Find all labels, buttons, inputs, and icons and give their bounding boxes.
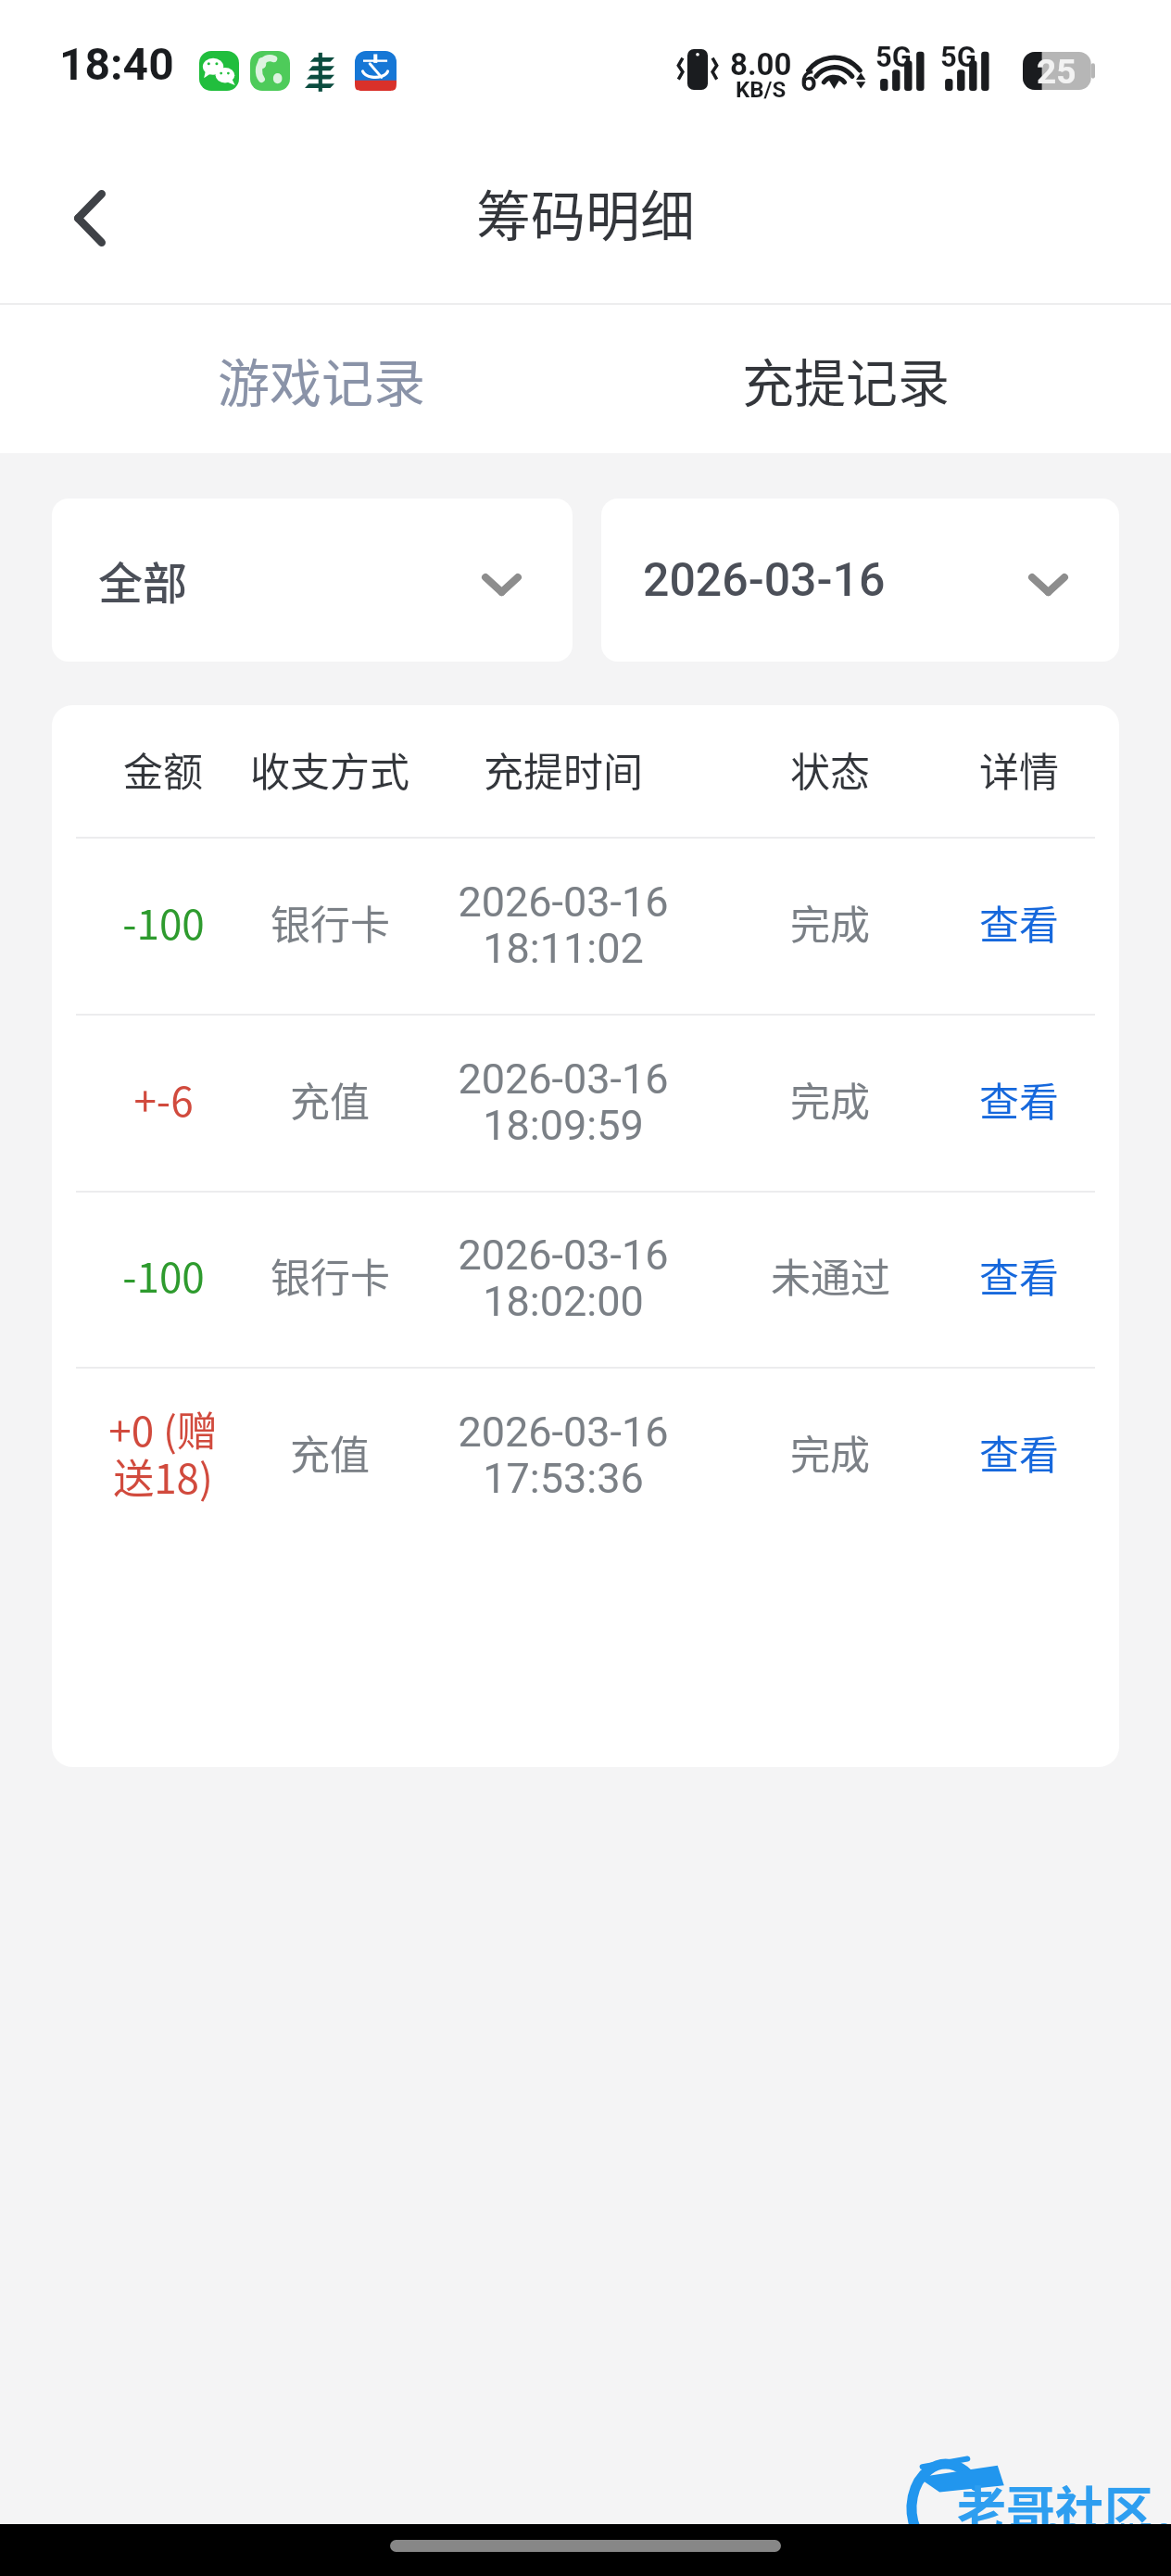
staticText: 充值 bbox=[290, 1423, 370, 1481]
staticText: 游戏记录 bbox=[218, 342, 425, 417]
staticText: 查看 bbox=[979, 1070, 1059, 1128]
staticText: 详情 bbox=[979, 740, 1059, 798]
staticText: 全部 bbox=[98, 548, 188, 612]
staticText: 完成 bbox=[790, 893, 870, 951]
staticText: 金额 bbox=[123, 740, 203, 798]
staticText: +-6 bbox=[133, 1069, 194, 1129]
staticText: 充提记录 bbox=[742, 342, 950, 417]
button[interactable]: Back bbox=[39, 167, 141, 269]
button[interactable]: 充提记录 bbox=[585, 305, 1171, 453]
staticText: 充提时间 bbox=[484, 740, 643, 798]
staticText: -100 bbox=[122, 1245, 205, 1305]
staticText: 状态 bbox=[790, 740, 870, 798]
staticText: 25 bbox=[1037, 52, 1077, 90]
staticText: KB/S bbox=[736, 77, 787, 103]
staticText: -100 bbox=[122, 892, 205, 952]
staticText: 筹码明细 bbox=[476, 173, 696, 252]
staticText: 18:40 bbox=[59, 38, 174, 90]
staticText: 未通过 bbox=[771, 1246, 890, 1304]
staticText: 收支方式 bbox=[250, 740, 409, 798]
button[interactable]: 查看 bbox=[926, 1188, 1112, 1362]
staticText: 2026-03-16 18:02:00 bbox=[458, 1231, 669, 1326]
staticText: 查看 bbox=[979, 1246, 1059, 1304]
button[interactable]: 2026-03-16 bbox=[601, 499, 1119, 662]
staticText: 银行卡 bbox=[271, 893, 390, 951]
button[interactable]: 查看 bbox=[926, 1011, 1112, 1186]
staticText: 查看 bbox=[979, 893, 1059, 951]
button[interactable]: 游戏记录 bbox=[0, 305, 585, 453]
staticText: 2026-03-16 bbox=[643, 553, 886, 608]
button[interactable]: 查看 bbox=[926, 834, 1112, 1009]
staticText: 完成 bbox=[790, 1423, 870, 1481]
staticText: 查看 bbox=[979, 1423, 1059, 1481]
staticText: 5G bbox=[875, 40, 912, 73]
staticText: 银行卡 bbox=[271, 1246, 390, 1304]
staticText: 2026-03-16 17:53:36 bbox=[458, 1408, 669, 1503]
staticText: 2026-03-16 18:09:59 bbox=[458, 1054, 669, 1150]
button[interactable]: 查看 bbox=[926, 1364, 1112, 1539]
staticText: 5G bbox=[940, 40, 976, 73]
staticText: 充值 bbox=[290, 1070, 370, 1128]
staticText: +0 (赠 送18) bbox=[108, 1399, 218, 1506]
staticText: 8.00 bbox=[730, 46, 792, 82]
staticText: 6 bbox=[800, 64, 817, 97]
staticText: LAOGESHEQU bbox=[1010, 2519, 1171, 2544]
staticText: 完成 bbox=[790, 1070, 870, 1128]
button[interactable]: 全部 bbox=[52, 499, 573, 662]
staticText: 老哥社区 bbox=[957, 2471, 1153, 2543]
staticText: 2026-03-16 18:11:02 bbox=[458, 878, 669, 973]
